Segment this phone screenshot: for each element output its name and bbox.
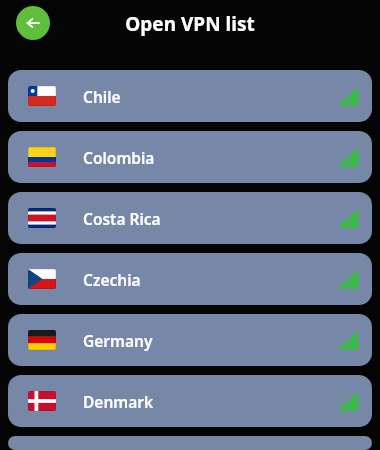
staticText: Open VPN list [0, 11, 380, 37]
button[interactable]: Denmark [8, 375, 372, 427]
button[interactable]: Costa Rica [8, 192, 372, 244]
staticText: Costa Rica [83, 208, 161, 229]
button[interactable]: Germany [8, 314, 372, 366]
button[interactable]: Back [16, 6, 50, 40]
button[interactable]: Chile [8, 70, 372, 122]
staticText: Denmark [83, 391, 154, 412]
button[interactable]: Czechia [8, 253, 372, 305]
staticText: Germany [83, 330, 153, 351]
staticText: Colombia [83, 147, 155, 168]
button[interactable]: Colombia [8, 131, 372, 183]
staticText: Chile [83, 86, 121, 107]
staticText: Czechia [83, 269, 141, 290]
button[interactable] [8, 436, 372, 450]
